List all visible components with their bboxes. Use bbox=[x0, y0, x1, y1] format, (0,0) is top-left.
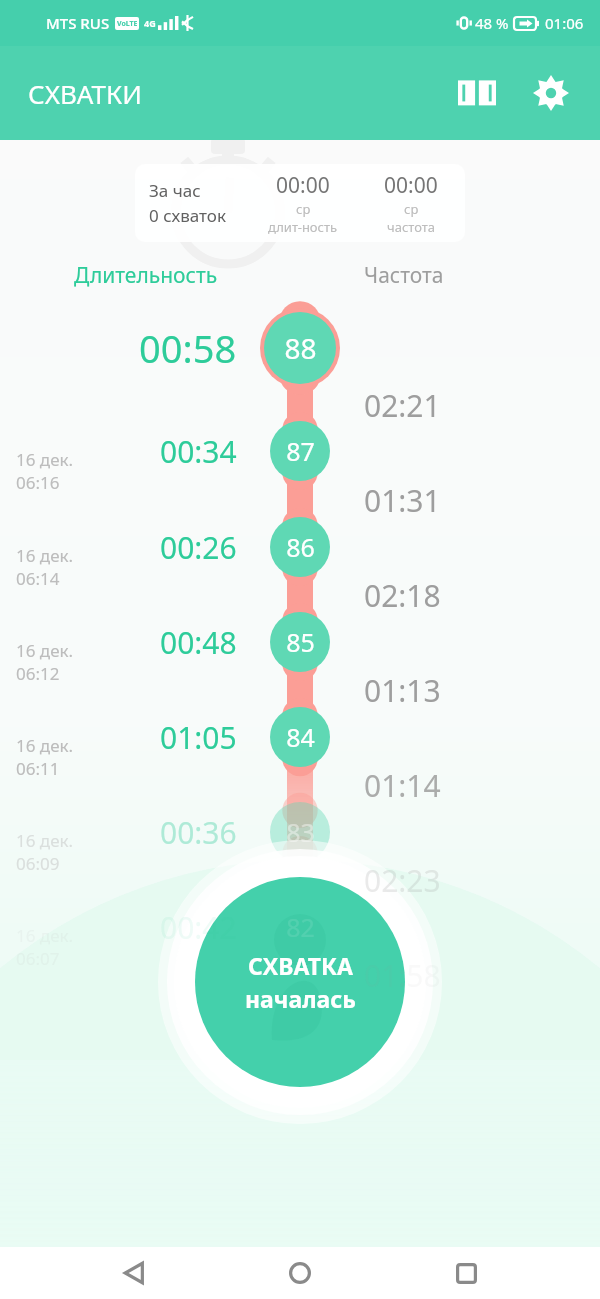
button[interactable]: 00:34 bbox=[57, 425, 237, 477]
staticText: 00:00 bbox=[276, 171, 330, 200]
button[interactable]: 00:58 bbox=[57, 322, 237, 374]
button[interactable]: Назад bbox=[102, 1247, 166, 1299]
staticText: 06:11 bbox=[16, 757, 60, 780]
button[interactable]: 00:48 bbox=[57, 616, 237, 668]
staticText: 00:48 bbox=[160, 622, 237, 663]
button[interactable]: 00:42 bbox=[57, 901, 237, 953]
staticText: 88 bbox=[284, 329, 317, 367]
staticText: ср bbox=[296, 200, 311, 218]
staticText: 16 дек. bbox=[16, 924, 74, 947]
button[interactable]: Настройки bbox=[520, 62, 582, 124]
button[interactable]: 16 дек. bbox=[16, 639, 126, 685]
staticText: 02:18 bbox=[364, 575, 441, 616]
button[interactable]: 82 bbox=[260, 907, 340, 947]
button[interactable]: 16 дек. bbox=[16, 734, 126, 780]
staticText: длит-ность bbox=[268, 218, 338, 236]
staticText: 02:21 bbox=[364, 385, 441, 426]
button[interactable]: 16 дек. bbox=[16, 924, 126, 970]
staticText: 01:05 bbox=[160, 717, 237, 758]
staticText: 4G bbox=[144, 17, 156, 29]
staticText: Длительность bbox=[74, 261, 218, 290]
button[interactable]: 16 дек. bbox=[16, 829, 126, 875]
staticText: 87 bbox=[286, 434, 315, 468]
button[interactable]: За час bbox=[135, 164, 465, 242]
button[interactable]: Справка bbox=[446, 62, 508, 124]
staticText: 83 bbox=[286, 815, 315, 849]
staticText: VoLTE bbox=[117, 19, 138, 29]
staticText: 06:16 bbox=[16, 471, 60, 494]
button[interactable]: 83 bbox=[260, 812, 340, 852]
button[interactable]: 16 дек. bbox=[16, 448, 126, 494]
staticText: За час bbox=[149, 179, 201, 202]
button[interactable]: 01:13 bbox=[364, 665, 534, 715]
staticText: 84 bbox=[286, 720, 315, 754]
button[interactable]: Домой bbox=[268, 1247, 332, 1299]
staticText: 86 bbox=[286, 530, 315, 564]
staticText: 82 bbox=[286, 910, 315, 944]
staticText: 85 bbox=[286, 625, 315, 659]
staticText: 06:14 bbox=[16, 567, 60, 590]
staticText: 00:36 bbox=[160, 812, 237, 853]
staticText: 16 дек. bbox=[16, 448, 74, 471]
staticText: 06:09 bbox=[16, 852, 60, 875]
staticText: Частота bbox=[364, 261, 444, 290]
staticText: СХВАТКА bbox=[248, 950, 353, 981]
staticText: 06:12 bbox=[16, 662, 60, 685]
button[interactable]: 86 bbox=[260, 527, 340, 567]
staticText: 01:06 bbox=[545, 13, 584, 33]
staticText: MTS RUS bbox=[46, 13, 110, 33]
staticText: частота bbox=[387, 218, 436, 236]
button[interactable]: 85 bbox=[260, 622, 340, 662]
staticText: 16 дек. bbox=[16, 544, 74, 567]
button[interactable]: 01:14 bbox=[364, 760, 534, 810]
button[interactable]: Недавние bbox=[434, 1247, 498, 1299]
staticText: 16 дек. bbox=[16, 734, 74, 757]
button[interactable]: 84 bbox=[260, 717, 340, 757]
staticText: началась bbox=[245, 983, 356, 1014]
button[interactable]: 02:18 bbox=[364, 570, 534, 620]
staticText: 02:23 bbox=[364, 860, 441, 901]
button[interactable]: СХВАТКА bbox=[195, 877, 405, 1087]
button[interactable]: 01:31 bbox=[364, 475, 534, 525]
button[interactable]: 02:23 bbox=[364, 855, 534, 905]
staticText: 01:58 bbox=[364, 955, 441, 996]
button[interactable]: 00:36 bbox=[57, 806, 237, 858]
staticText: 00:58 bbox=[139, 322, 237, 374]
staticText: 0 схваток bbox=[149, 204, 226, 227]
button[interactable]: 87 bbox=[260, 431, 340, 471]
button[interactable]: 01:58 bbox=[364, 950, 534, 1000]
button[interactable]: 02:21 bbox=[364, 380, 534, 430]
staticText: 00:00 bbox=[384, 171, 438, 200]
staticText: 00:42 bbox=[160, 907, 237, 948]
button[interactable]: 00:26 bbox=[57, 521, 237, 573]
button[interactable]: 01:05 bbox=[57, 711, 237, 763]
staticText: 00:26 bbox=[160, 527, 237, 568]
staticText: 01:14 bbox=[364, 765, 441, 806]
staticText: 16 дек. bbox=[16, 639, 74, 662]
button[interactable]: 16 дек. bbox=[16, 544, 126, 590]
staticText: 16 дек. bbox=[16, 829, 74, 852]
staticText: ср bbox=[404, 200, 419, 218]
staticText: 01:31 bbox=[364, 480, 441, 521]
staticText: 01:13 bbox=[364, 670, 441, 711]
staticText: СХВАТКИ bbox=[28, 76, 142, 111]
staticText: 00:34 bbox=[160, 431, 237, 472]
staticText: 48 % bbox=[475, 13, 509, 33]
button[interactable]: 88 bbox=[260, 328, 340, 368]
